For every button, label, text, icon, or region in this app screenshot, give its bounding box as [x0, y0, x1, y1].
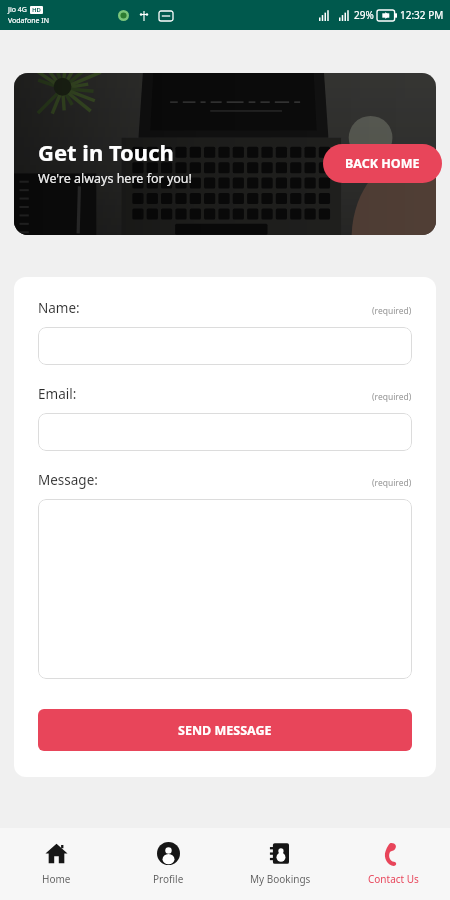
- staticText: BACK HOME: [345, 155, 420, 172]
- staticText: Contact Us: [368, 872, 419, 886]
- staticText: Profile: [153, 872, 184, 886]
- button[interactable]: BACK HOME: [323, 144, 442, 183]
- button[interactable]: Contact Us: [337, 828, 450, 900]
- staticText: Vodafone IN: [8, 16, 49, 26]
- staticText: (required): [372, 305, 412, 317]
- staticText: HD: [32, 6, 41, 14]
- other: My Bookings: [269, 842, 292, 865]
- staticText: (required): [372, 477, 412, 489]
- staticText: SEND MESSAGE: [178, 722, 272, 739]
- other: Home: [45, 842, 68, 865]
- staticText: Name:: [38, 299, 80, 317]
- staticText: 29%: [354, 8, 374, 22]
- staticText: Jio 4G: [8, 5, 27, 15]
- button[interactable]: [38, 413, 412, 451]
- staticText: We're always here for you!: [38, 170, 192, 187]
- button[interactable]: My Bookings: [224, 828, 337, 900]
- staticText: Get in Touch: [38, 137, 174, 167]
- button[interactable]: Profile: [112, 828, 224, 900]
- staticText: 12:32 PM: [400, 8, 444, 22]
- button[interactable]: [38, 327, 412, 365]
- staticText: (required): [372, 391, 412, 403]
- other: Profile: [157, 842, 180, 865]
- button[interactable]: [38, 499, 412, 679]
- staticText: Home: [42, 872, 71, 886]
- button[interactable]: Home: [0, 828, 112, 900]
- other: Contact Us: [382, 842, 405, 865]
- staticText: Email:: [38, 385, 77, 403]
- staticText: My Bookings: [250, 872, 311, 886]
- staticText: Message:: [38, 471, 98, 489]
- button[interactable]: SEND MESSAGE: [38, 709, 412, 751]
